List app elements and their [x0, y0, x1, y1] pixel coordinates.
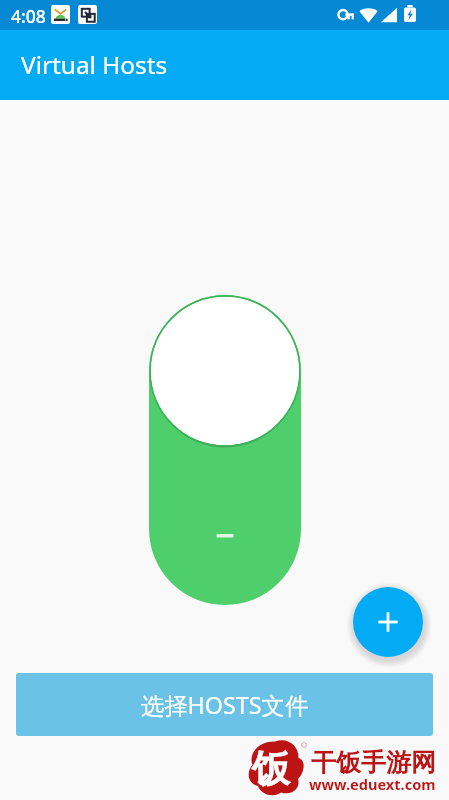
button[interactable]: 选择HOSTS文件: [16, 673, 433, 736]
button[interactable]: Toggle virtual hosts on or off: [149, 295, 301, 605]
staticText: 饭: [252, 745, 290, 793]
staticText: www.eduext.com: [309, 774, 436, 794]
staticText: 干饭手游网: [311, 747, 436, 778]
staticText: 4:08: [11, 4, 46, 28]
staticText: Virtual Hosts: [21, 48, 168, 81]
staticText: 选择HOSTS文件: [141, 689, 309, 721]
button[interactable]: Add host: [348, 582, 428, 662]
